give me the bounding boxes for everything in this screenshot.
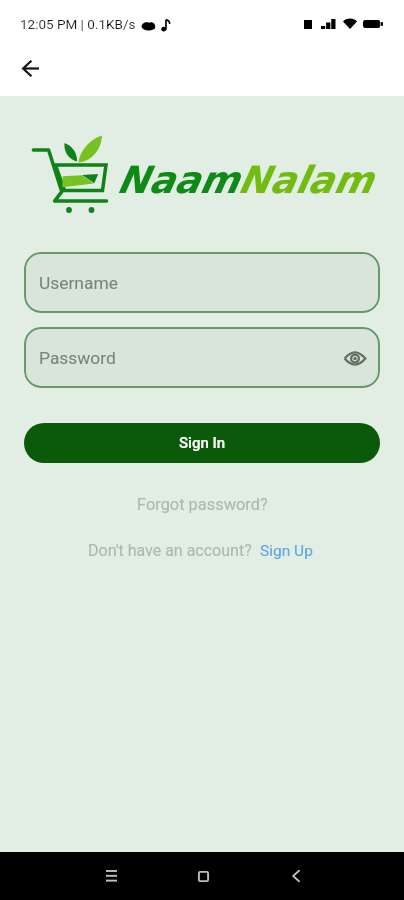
button[interactable]: Sign Up bbox=[260, 542, 313, 560]
staticText: Don't have an account? bbox=[88, 541, 252, 560]
staticText: Forgot password? bbox=[137, 495, 268, 514]
staticText: Password bbox=[39, 348, 116, 368]
button[interactable]: Show password bbox=[340, 343, 370, 373]
staticText: NaamNalam bbox=[118, 158, 373, 202]
button[interactable]: Password bbox=[24, 327, 380, 388]
button[interactable]: Forgot password? bbox=[127, 491, 278, 518]
button[interactable]: Back bbox=[7, 44, 55, 92]
button[interactable]: Back bbox=[272, 852, 320, 900]
button[interactable]: Sign In bbox=[24, 423, 380, 463]
button[interactable]: Recents bbox=[87, 852, 135, 900]
staticText: Sign In bbox=[179, 434, 226, 452]
staticText: Sign Up bbox=[260, 542, 313, 560]
staticText: Username bbox=[39, 273, 118, 293]
button[interactable]: Username bbox=[24, 252, 380, 313]
button[interactable]: Home bbox=[179, 852, 227, 900]
staticText: 12:05 PM | 0.1KB/s bbox=[20, 16, 136, 32]
